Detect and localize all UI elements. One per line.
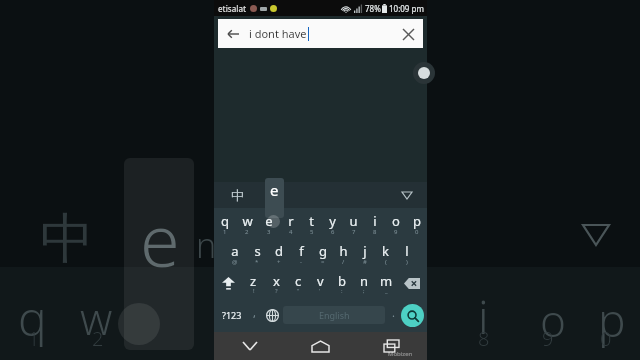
- button[interactable]: Home: [285, 332, 356, 360]
- staticText: f: [299, 242, 304, 260]
- button[interactable]: Hide keyboard: [214, 332, 285, 360]
- button[interactable]: Recent apps: [356, 332, 427, 360]
- button[interactable]: Back: [218, 19, 423, 48]
- staticText: i: [373, 212, 377, 230]
- staticText: 0: [600, 325, 612, 352]
- button[interactable]: j: [354, 238, 375, 268]
- staticText: e: [140, 190, 180, 288]
- staticText: 8: [478, 325, 490, 352]
- button[interactable]: f: [290, 238, 312, 268]
- staticText: ": [297, 287, 300, 295]
- button[interactable]: w: [236, 208, 258, 238]
- staticText: y: [329, 212, 336, 230]
- button[interactable]: o: [385, 208, 406, 238]
- button[interactable]: ?123: [217, 300, 247, 330]
- staticText: !: [253, 287, 255, 295]
- staticText: 10:09 pm: [389, 3, 424, 14]
- button[interactable]: .: [385, 300, 401, 330]
- staticText: o: [392, 212, 400, 230]
- staticText: n: [196, 222, 217, 268]
- staticText: 8: [373, 228, 377, 236]
- button[interactable]: ,: [247, 300, 261, 330]
- staticText: t: [309, 212, 314, 230]
- staticText: /: [342, 258, 345, 266]
- button[interactable]: r: [280, 208, 301, 238]
- staticText: w: [242, 212, 253, 230]
- staticText: =: [321, 258, 325, 266]
- staticText: 中: [40, 205, 94, 273]
- button[interactable]: English: [283, 306, 385, 324]
- button[interactable]: i: [364, 208, 385, 238]
- staticText: w: [80, 288, 113, 348]
- staticText: -: [300, 258, 302, 266]
- staticText: 9: [542, 325, 554, 352]
- staticText: 5: [310, 228, 314, 236]
- staticText: u: [349, 212, 358, 230]
- button[interactable]: More: [397, 185, 417, 205]
- staticText: i dont have: [249, 26, 307, 41]
- button[interactable]: u: [343, 208, 364, 238]
- button[interactable]: Change keyboard: [261, 300, 283, 330]
- staticText: (: [385, 258, 387, 266]
- staticText: a: [231, 242, 239, 260]
- staticText: Mobizen: [388, 350, 413, 358]
- button[interactable]: a: [224, 238, 246, 268]
- button[interactable]: h: [333, 238, 354, 268]
- button[interactable]: c: [287, 268, 309, 298]
- staticText: d: [275, 242, 283, 260]
- staticText: k: [382, 242, 389, 260]
- staticText: r: [288, 212, 294, 230]
- staticText: g: [319, 242, 327, 260]
- staticText: 7: [352, 228, 356, 236]
- staticText: English: [319, 309, 350, 321]
- staticText: 2: [92, 325, 104, 352]
- staticText: o: [540, 290, 566, 350]
- button[interactable]: y: [322, 208, 343, 238]
- staticText: #: [363, 258, 367, 266]
- staticText: p: [413, 212, 421, 230]
- staticText: z: [250, 272, 257, 290]
- staticText: @: [232, 258, 238, 266]
- button[interactable]: g: [312, 238, 333, 268]
- staticText: _: [385, 287, 388, 295]
- button[interactable]: s: [246, 238, 268, 268]
- staticText: i: [478, 285, 489, 348]
- staticText: c: [295, 272, 302, 290]
- staticText: 78%: [365, 3, 381, 14]
- button[interactable]: t: [301, 208, 322, 238]
- staticText: e: [270, 180, 279, 200]
- button[interactable]: e: [258, 208, 280, 238]
- staticText: 4: [289, 228, 293, 236]
- button[interactable]: m: [375, 268, 397, 298]
- button[interactable]: Shift: [214, 268, 242, 298]
- staticText: 2: [245, 228, 249, 236]
- button[interactable]: Backspace: [397, 268, 427, 298]
- staticText: +: [277, 258, 281, 266]
- staticText: j: [363, 242, 367, 260]
- button[interactable]: k: [375, 238, 396, 268]
- staticText: ?123: [222, 309, 242, 321]
- staticText: 9: [394, 228, 398, 236]
- staticText: q: [221, 212, 229, 230]
- staticText: v: [317, 272, 324, 290]
- button[interactable]: n: [353, 268, 375, 298]
- button[interactable]: z: [242, 268, 265, 298]
- button[interactable]: b: [331, 268, 353, 298]
- button[interactable]: Language: [226, 184, 248, 206]
- button[interactable]: q: [214, 208, 236, 238]
- staticText: ?: [275, 287, 278, 295]
- staticText: l: [405, 242, 409, 260]
- button[interactable]: l: [396, 238, 417, 268]
- button[interactable]: Clear: [399, 25, 417, 43]
- button[interactable]: x: [265, 268, 287, 298]
- staticText: :: [341, 287, 343, 295]
- button[interactable]: Search: [401, 304, 424, 327]
- staticText: x: [273, 272, 280, 290]
- staticText: 1: [223, 228, 227, 236]
- staticText: 1: [28, 325, 40, 352]
- button[interactable]: v: [309, 268, 331, 298]
- button[interactable]: p: [406, 208, 427, 238]
- button[interactable]: Back: [224, 25, 242, 43]
- staticText: ,: [253, 305, 256, 320]
- button[interactable]: d: [268, 238, 290, 268]
